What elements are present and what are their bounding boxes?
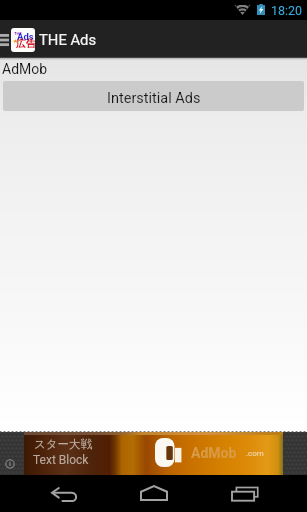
button[interactable]: Open navigation drawer [0, 21, 10, 58]
button[interactable]: Back [19, 475, 109, 512]
button[interactable]: Interstitial Ads [3, 81, 304, 111]
staticText: THE [14, 31, 22, 36]
staticText: Ads [17, 31, 34, 42]
staticText: Text Block [33, 453, 89, 467]
button[interactable]: Home [109, 475, 199, 512]
staticText: THE Ads [39, 31, 97, 48]
staticText: スター大戦 [34, 437, 93, 451]
staticText: AdMob [2, 61, 48, 77]
button[interactable]: Ad information [5, 459, 15, 469]
staticText: 18:20 [271, 3, 303, 18]
button[interactable]: Recent apps [199, 475, 289, 512]
button[interactable]: THE Ads app icon [11, 28, 35, 52]
staticText: 広告 [16, 38, 35, 50]
staticText: .com [246, 449, 264, 458]
button[interactable]: Advertisement [24, 432, 283, 475]
staticText: Interstitial Ads [107, 90, 201, 107]
staticText: AdMob [191, 445, 237, 461]
